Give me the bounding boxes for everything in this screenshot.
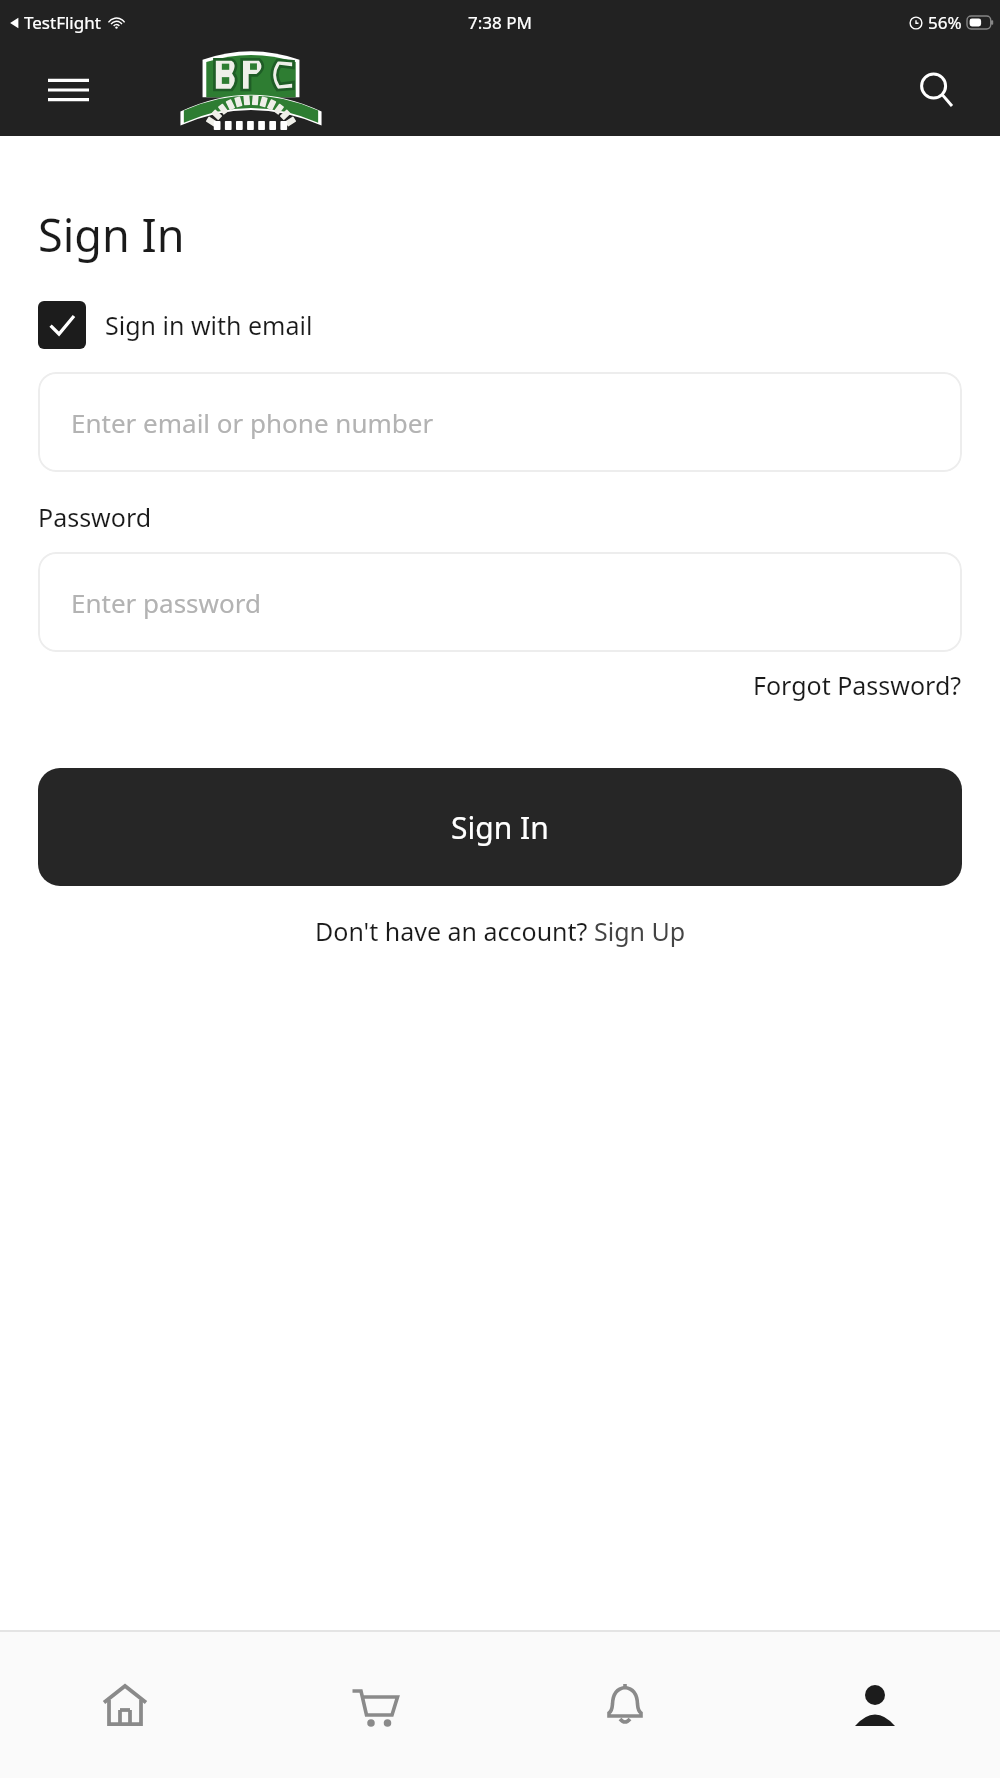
staticText: Enter email or phone number: [71, 405, 434, 440]
button[interactable]: Profile: [750, 1632, 1000, 1778]
staticText: Password: [38, 500, 152, 534]
button[interactable]: Sign In: [38, 768, 962, 886]
staticText: Sign in with email: [105, 308, 313, 342]
staticText: Don't have an account?: [315, 914, 594, 948]
button[interactable]: Sign in with email: [38, 301, 313, 349]
button[interactable]: Cart: [250, 1632, 500, 1778]
staticText: 56%: [928, 11, 962, 34]
button[interactable]: Search: [907, 61, 965, 119]
button[interactable]: Enter email or phone number: [38, 372, 962, 472]
button[interactable]: Forgot Password?: [753, 662, 962, 708]
staticText: TestFlight: [24, 11, 101, 34]
staticText: Sign In: [451, 807, 549, 848]
staticText: 7:38 PM: [468, 11, 532, 34]
button[interactable]: Sign Up: [594, 914, 686, 948]
staticText: Sign In: [38, 204, 185, 265]
button[interactable]: Notifications: [500, 1632, 750, 1778]
button[interactable]: Menu: [40, 62, 96, 118]
staticText: Enter password: [71, 585, 261, 620]
button[interactable]: Enter password: [38, 552, 962, 652]
button[interactable]: Home: [0, 1632, 250, 1778]
button[interactable]: Bengaluru Pet Company home: [165, 44, 337, 136]
